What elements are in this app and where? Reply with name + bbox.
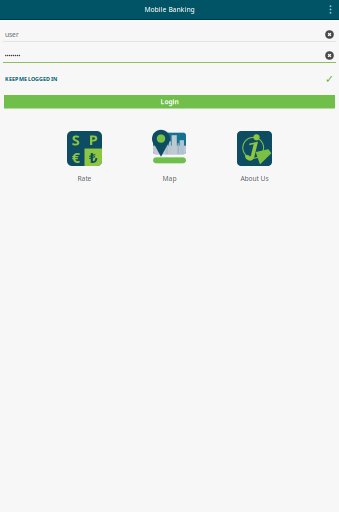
staticText: P: [89, 130, 98, 149]
button[interactable]: S: [67, 131, 102, 183]
button[interactable]: More options: [322, 0, 339, 19]
staticText: Mobile Banking: [144, 5, 194, 14]
staticText: KEEP ME LOGGED IN: [5, 75, 57, 83]
staticText: About Us: [240, 174, 268, 183]
staticText: Login: [160, 97, 178, 106]
staticText: ₺: [89, 147, 97, 167]
button[interactable]: Clear username: [323, 28, 336, 41]
staticText: ✓: [325, 73, 334, 85]
button[interactable]: KEEP ME LOGGED IN: [0, 74, 339, 84]
staticText: Rate: [77, 174, 91, 183]
staticText: Map: [162, 174, 176, 183]
staticText: S: [72, 130, 80, 149]
button[interactable]: Map: [153, 131, 186, 183]
staticText: user: [5, 30, 19, 39]
button[interactable]: About Us: [237, 131, 272, 183]
staticText: €: [72, 147, 80, 167]
button[interactable]: Login: [0, 95, 339, 108]
button[interactable]: Clear password: [323, 49, 336, 62]
